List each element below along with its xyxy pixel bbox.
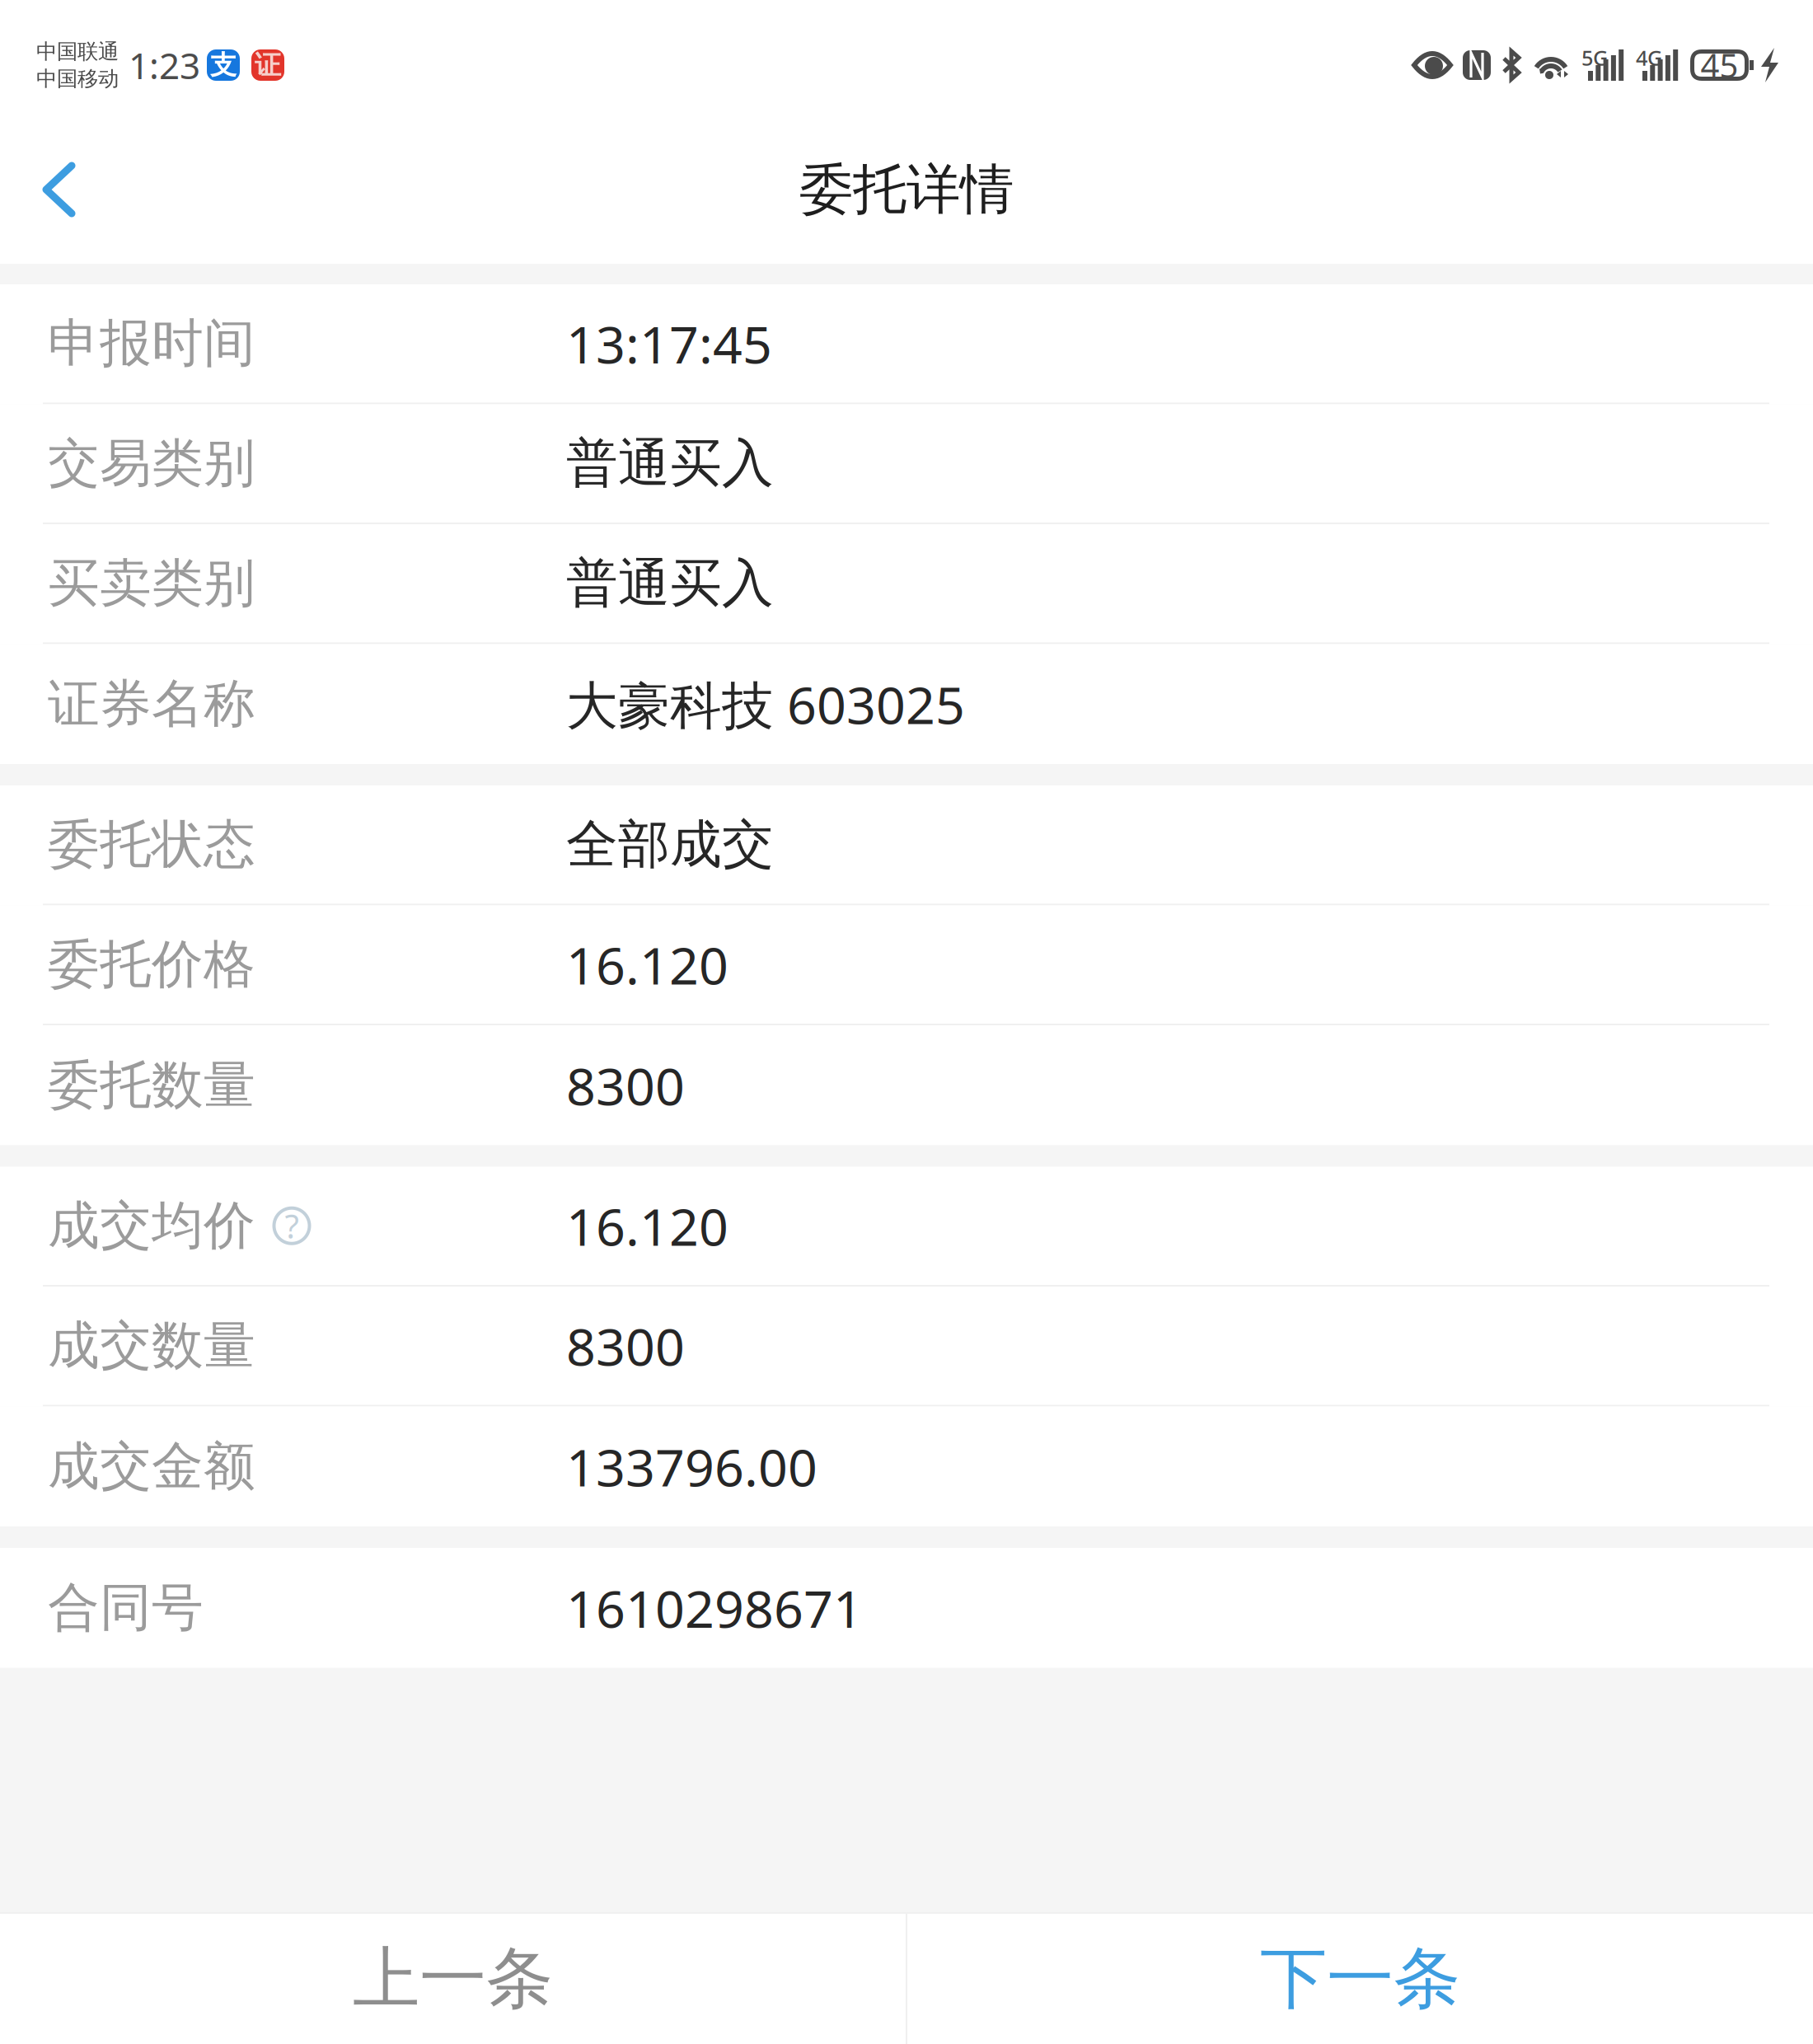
staticText: 中国移动 <box>36 66 119 92</box>
staticText: 16.120 <box>566 930 728 999</box>
staticText: 合同号 <box>48 1576 204 1640</box>
staticText: 16.120 <box>566 1191 728 1260</box>
staticText: 大豪科技 603025 <box>566 670 965 738</box>
staticText: 成交金额 <box>48 1435 255 1498</box>
staticText: 证 <box>255 49 281 81</box>
staticText: 中国联通 <box>36 39 119 64</box>
staticText: 1610298671 <box>566 1573 863 1642</box>
staticText: 申报时间 <box>48 312 255 375</box>
staticText: 下一条 <box>1260 1938 1460 2020</box>
staticText: 成交均价 <box>48 1194 255 1258</box>
staticText: 买卖类别 <box>48 552 255 615</box>
button[interactable]: 下一条 <box>907 1914 1813 2044</box>
staticText: 委托状态 <box>48 813 255 876</box>
staticText: 45 <box>1701 43 1738 87</box>
staticText: 全部成交 <box>566 813 774 876</box>
staticText: 证券名称 <box>48 672 255 736</box>
staticText: 8300 <box>566 1051 685 1120</box>
staticText: 13:17:45 <box>566 309 772 378</box>
button[interactable]: 返回 <box>0 115 124 264</box>
button[interactable]: 上一条 <box>0 1914 906 2044</box>
staticText: 普通买入 <box>566 432 774 495</box>
staticText: 支 <box>210 49 237 81</box>
staticText: 委托数量 <box>48 1054 255 1117</box>
button[interactable]: 成交均价说明 <box>272 1206 312 1246</box>
staticText: 5G <box>1581 44 1608 72</box>
staticText: 1:23 <box>129 41 200 89</box>
staticText: 上一条 <box>353 1938 553 2020</box>
staticText: 委托详情 <box>799 157 1014 223</box>
staticText: 普通买入 <box>566 552 774 615</box>
staticText: 成交数量 <box>48 1314 255 1377</box>
staticText: 委托价格 <box>48 933 255 996</box>
staticText: 交易类别 <box>48 432 255 495</box>
staticText: 133796.00 <box>566 1432 817 1501</box>
staticText: 4G <box>1636 44 1662 72</box>
staticText: ? <box>285 1204 299 1248</box>
staticText: 8300 <box>566 1311 685 1380</box>
